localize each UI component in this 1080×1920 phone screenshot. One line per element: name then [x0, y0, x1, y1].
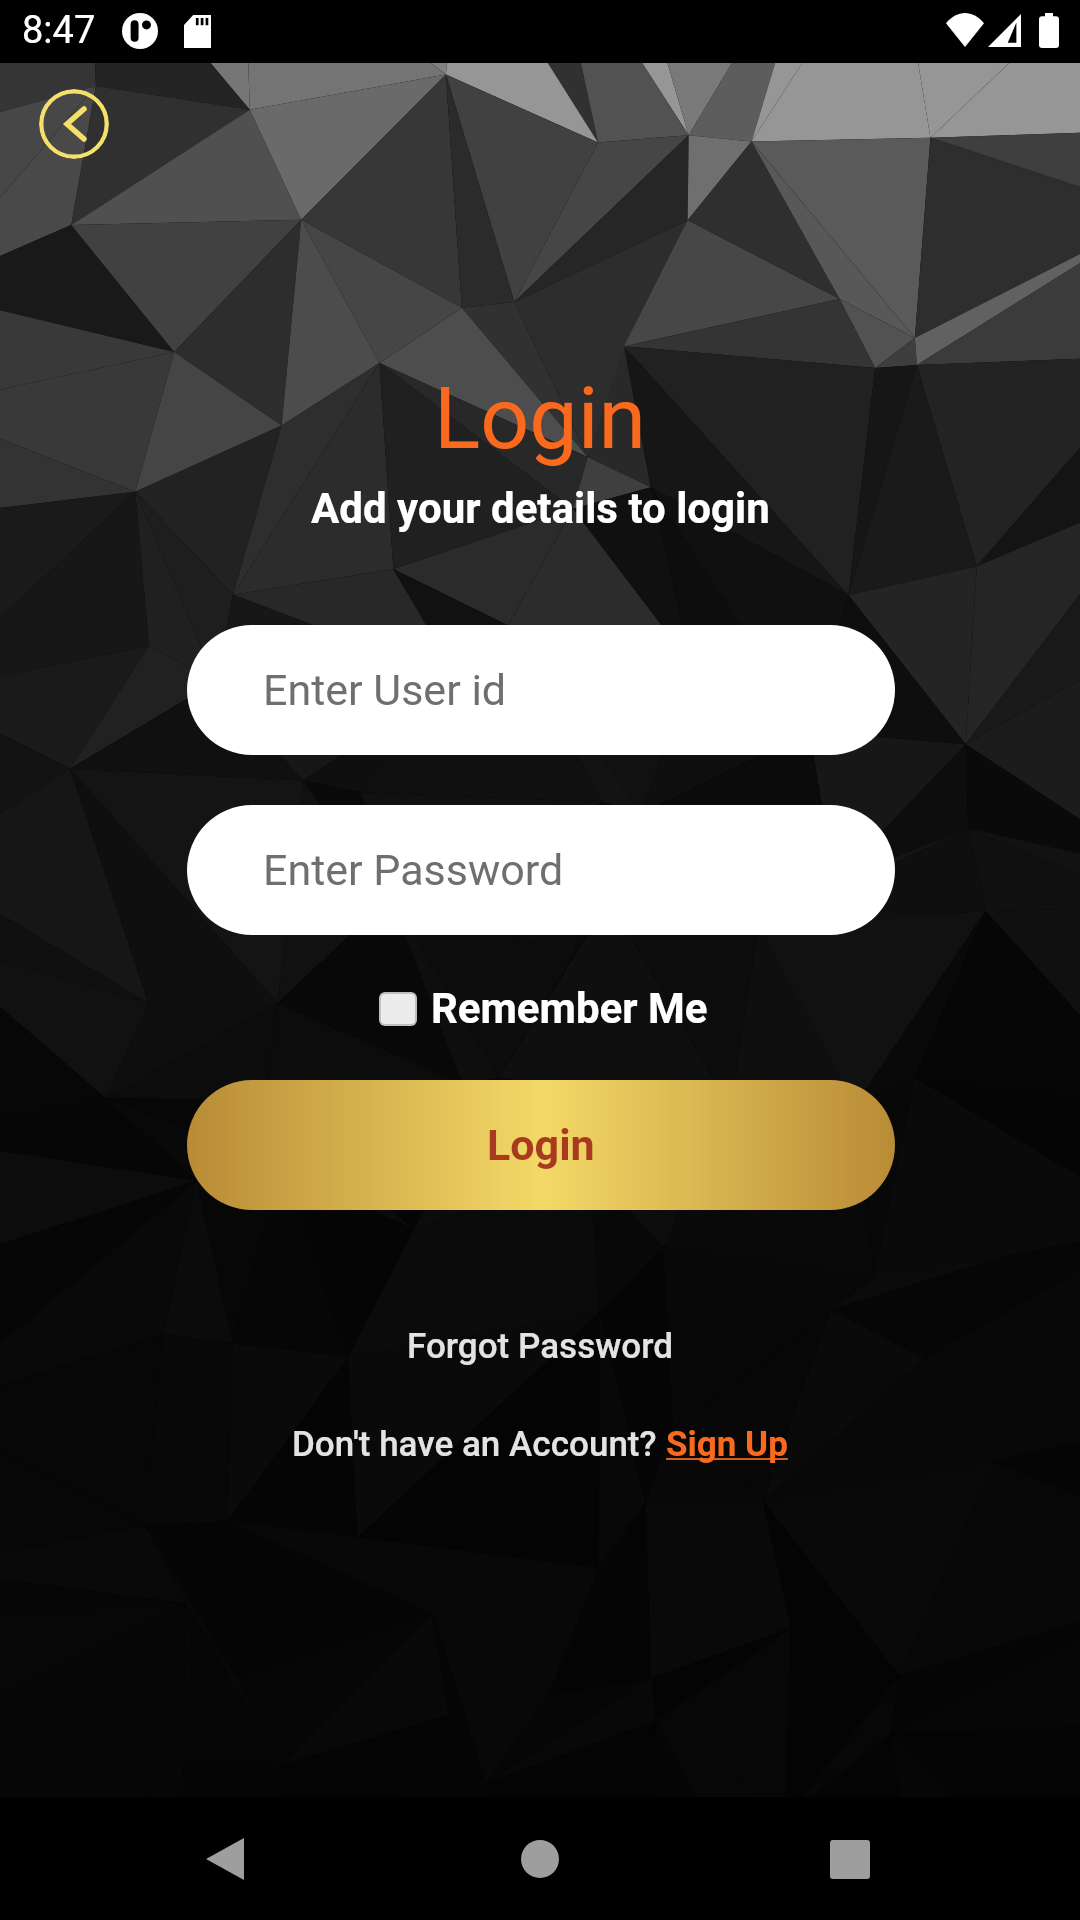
staticText: Add your details to login — [311, 484, 770, 533]
button[interactable]: Remember Me — [379, 981, 708, 1036]
staticText: Login — [434, 368, 647, 469]
button[interactable]: Login — [187, 1080, 895, 1210]
button[interactable]: Home — [480, 1799, 600, 1919]
staticText: Forgot Password — [407, 1326, 673, 1367]
button[interactable]: Recent apps — [790, 1799, 910, 1919]
button[interactable]: Forgot Password — [407, 1326, 673, 1367]
staticText: Don't have an Account? — [292, 1424, 666, 1465]
staticText: Sign Up — [666, 1424, 788, 1465]
button[interactable]: Enter User id — [187, 625, 895, 755]
staticText: Enter Password — [263, 845, 564, 895]
staticText: Login — [487, 1120, 595, 1170]
staticText: Remember Me — [431, 984, 708, 1033]
button[interactable]: Sign Up — [666, 1424, 788, 1465]
button[interactable]: Navigate back — [39, 89, 109, 159]
button[interactable]: Back — [165, 1799, 285, 1919]
button[interactable]: Enter Password — [187, 805, 895, 935]
staticText: 8:47 — [22, 8, 96, 53]
staticText: Enter User id — [263, 665, 507, 715]
